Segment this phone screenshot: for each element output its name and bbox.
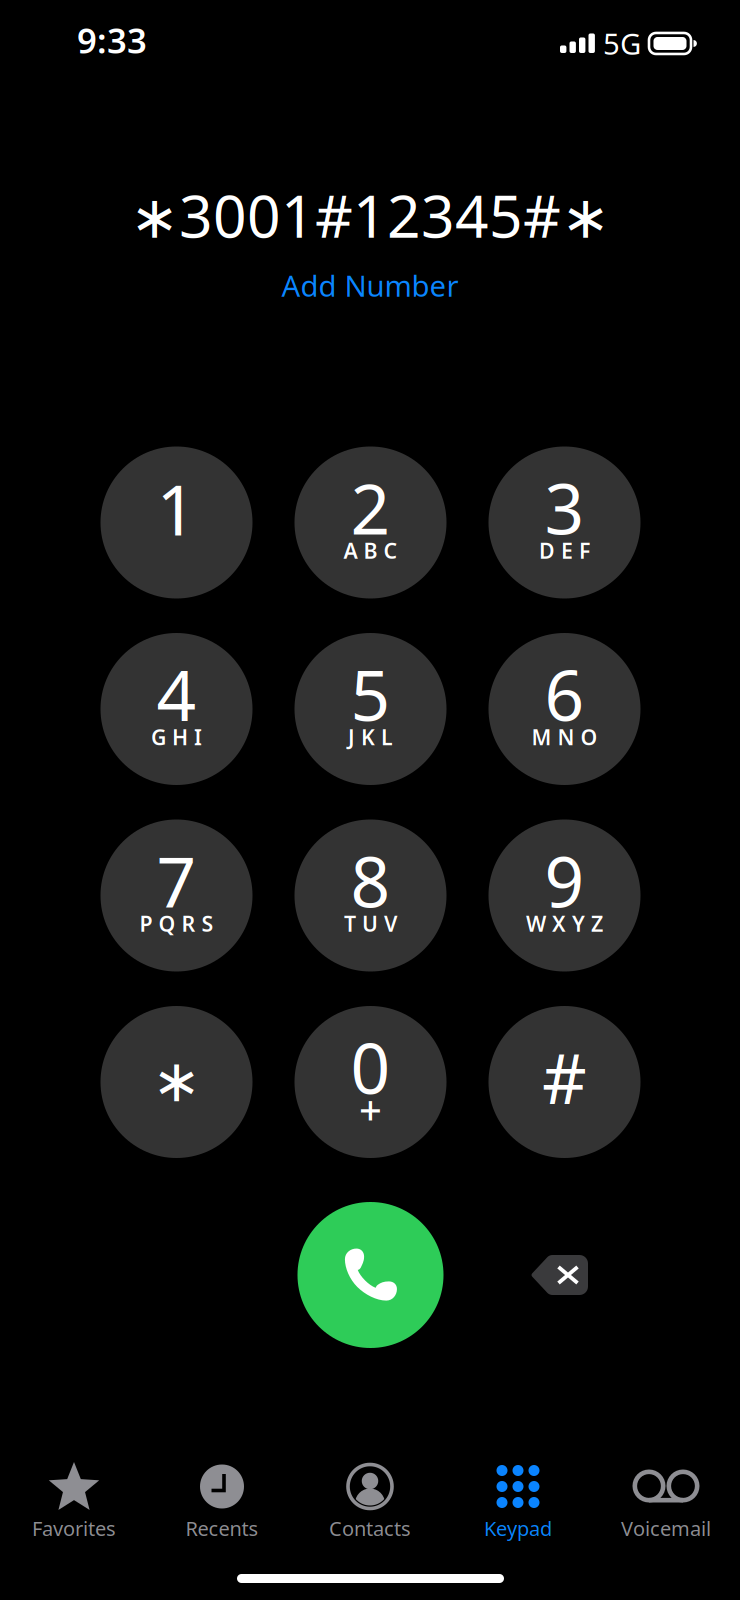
staticText: P (139, 909, 152, 938)
staticText: # (542, 1031, 587, 1123)
staticText: O (580, 723, 597, 751)
staticText: W (526, 909, 546, 938)
staticText: 6 (544, 648, 584, 740)
button[interactable]: Keypad (444, 1464, 592, 1542)
staticText: Z (591, 909, 603, 938)
staticText: 9:33 (77, 17, 147, 63)
staticText: 5 (350, 648, 390, 740)
button[interactable]: 6 (488, 633, 640, 785)
staticText: N (557, 723, 574, 751)
staticText: V (384, 909, 397, 938)
staticText: R (181, 909, 195, 938)
staticText: Keypad (484, 1515, 552, 1542)
staticText: B (363, 536, 377, 565)
staticText: 0 (350, 1021, 390, 1113)
staticText: ∗3001#12345#∗ (130, 176, 610, 254)
staticText: 1 (156, 462, 196, 555)
button[interactable]: 2 (294, 446, 446, 598)
staticText: Recents (185, 1515, 258, 1542)
button[interactable]: 8 (294, 819, 446, 971)
staticText: D (539, 536, 555, 565)
button[interactable]: # (488, 1006, 640, 1158)
staticText: Voicemail (621, 1515, 711, 1542)
staticText: Favorites (32, 1515, 116, 1542)
staticText: Contacts (329, 1515, 411, 1542)
staticText: 8 (350, 834, 390, 927)
staticText: L (381, 723, 393, 751)
button[interactable]: Recents (148, 1464, 296, 1542)
staticText: F (579, 536, 590, 565)
staticText: I (194, 723, 202, 751)
staticText: 2 (350, 461, 390, 554)
button[interactable]: Favorites (0, 1464, 148, 1542)
button[interactable]: 9 (488, 819, 640, 971)
staticText: M (531, 723, 551, 751)
staticText: ∗ (152, 1048, 201, 1114)
button[interactable]: 7 (100, 819, 252, 971)
button[interactable]: Add Number (269, 262, 470, 309)
staticText: K (361, 723, 375, 751)
button[interactable]: Voicemail (592, 1464, 740, 1542)
staticText: Y (572, 909, 585, 938)
staticText: X (552, 909, 566, 938)
button[interactable]: Contacts (296, 1464, 444, 1542)
staticText: S (201, 909, 213, 938)
button[interactable]: 1 (100, 446, 252, 598)
button[interactable]: 4 (100, 633, 252, 785)
button[interactable]: ∗ (100, 1006, 252, 1158)
staticText: T (344, 909, 356, 938)
staticText: Add Number (281, 266, 458, 305)
staticText: E (561, 536, 573, 565)
staticText: H (172, 723, 188, 751)
button[interactable]: 5 (294, 633, 446, 785)
button[interactable]: Call (297, 1202, 443, 1348)
button[interactable]: 3 (488, 446, 640, 598)
staticText: A (343, 536, 357, 565)
staticText: 7 (156, 834, 196, 927)
staticText: Q (158, 909, 175, 938)
button[interactable]: 0 (294, 1006, 446, 1158)
staticText: J (348, 723, 355, 751)
staticText: 3 (544, 461, 584, 554)
staticText: 5G (603, 24, 641, 63)
staticText: + (359, 1082, 382, 1135)
staticText: 9 (544, 834, 584, 927)
staticText: 4 (156, 648, 196, 740)
staticText: C (383, 536, 397, 565)
staticText: U (362, 909, 378, 938)
staticText: G (151, 723, 166, 751)
button[interactable]: Delete (505, 1227, 615, 1323)
